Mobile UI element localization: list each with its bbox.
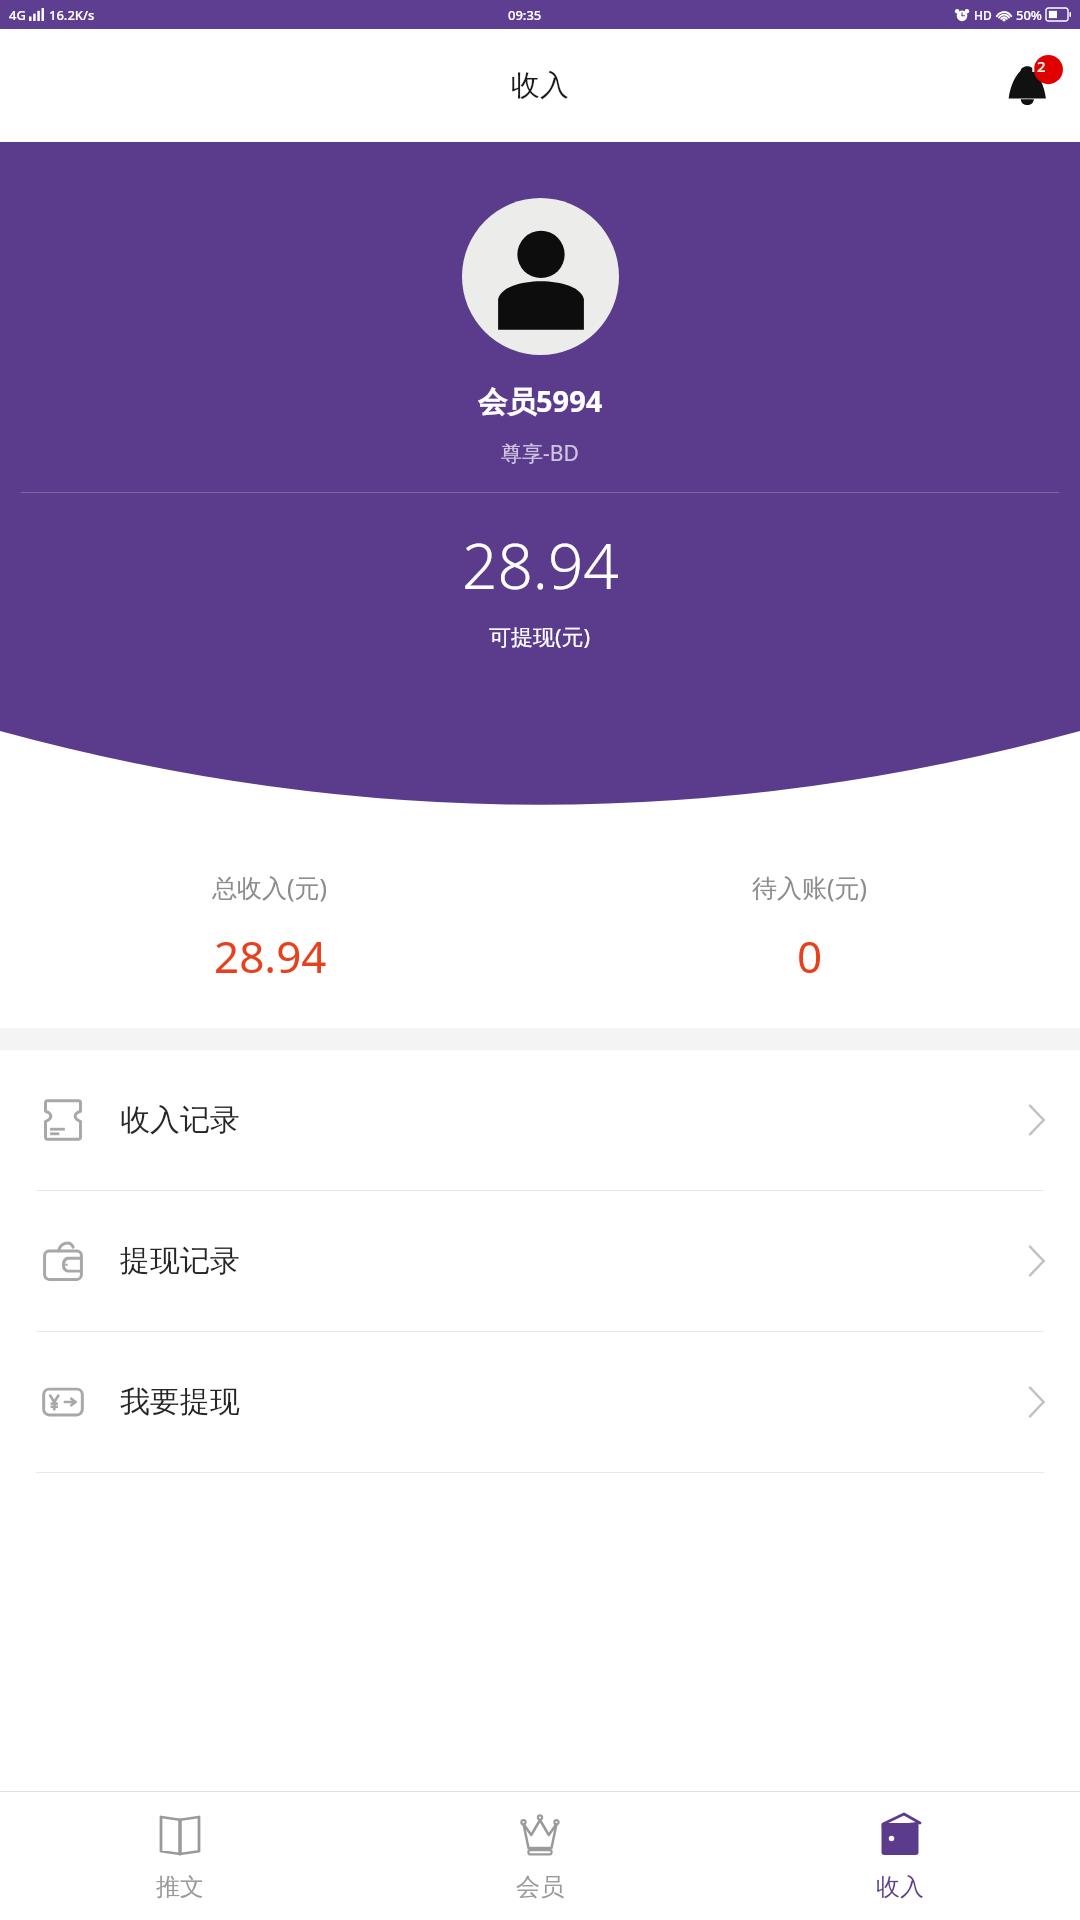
staticText: 收入 — [876, 1872, 924, 1902]
staticText: HD — [974, 7, 992, 23]
staticText: 尊享-BD — [501, 439, 579, 468]
staticText: 推文 — [156, 1872, 204, 1902]
staticText: 4G — [9, 6, 26, 24]
staticText: 28.94 — [214, 926, 327, 986]
staticText: 提现记录 — [120, 1242, 240, 1280]
button[interactable]: 待入账(元) — [540, 870, 1080, 986]
staticText: 待入账(元) — [752, 870, 868, 904]
button[interactable]: 会员 — [360, 1792, 720, 1920]
staticText: 12 — [1026, 56, 1048, 76]
button[interactable]: 收入 — [720, 1792, 1080, 1920]
staticText: 28.94 — [462, 523, 619, 607]
staticText: 会员 — [516, 1872, 564, 1902]
staticText: 09:35 — [508, 6, 542, 24]
button[interactable]: Notifications, 12 unread — [1000, 55, 1062, 117]
button[interactable]: 推文 — [0, 1792, 360, 1920]
staticText: 16.2K/s — [49, 6, 95, 24]
staticText: 可提现(元) — [489, 621, 591, 651]
staticText: 会员5994 — [478, 381, 603, 421]
button[interactable]: 提现记录 — [0, 1191, 1080, 1331]
staticText: 收入 — [511, 67, 569, 104]
staticText: 总收入(元) — [212, 870, 328, 904]
button[interactable]: 我要提现 — [0, 1332, 1080, 1472]
button[interactable]: 总收入(元) — [0, 870, 540, 986]
staticText: 收入记录 — [120, 1101, 240, 1139]
staticText: 50% — [1016, 6, 1042, 24]
button[interactable]: 收入记录 — [0, 1050, 1080, 1190]
staticText: 我要提现 — [120, 1383, 240, 1421]
staticText: 0 — [797, 926, 823, 986]
